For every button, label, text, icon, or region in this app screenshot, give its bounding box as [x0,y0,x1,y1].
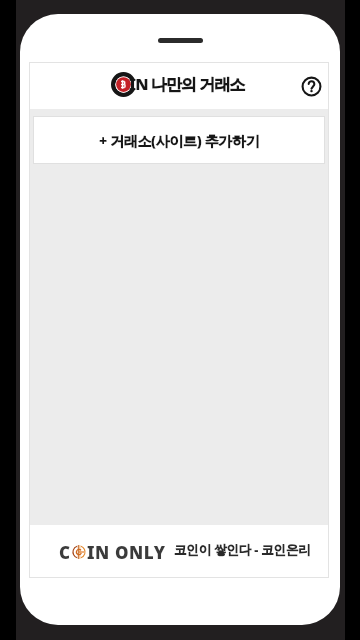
button[interactable]: + 거래소(사이트) 추가하기 [33,116,325,164]
button[interactable]: Help [298,73,324,99]
staticText: IN ONLY [87,541,166,564]
staticText: IN 나만의 거래소 [129,73,245,95]
staticText: C [59,541,71,564]
staticText: 코인이 쌓인다 - 코인온리 [174,541,311,558]
staticText: + 거래소(사이트) 추가하기 [99,131,260,150]
